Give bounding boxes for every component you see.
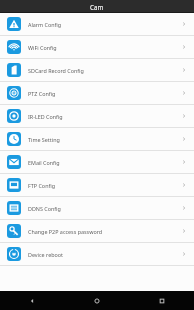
button[interactable]: Alarm Config xyxy=(0,13,194,36)
button[interactable]: IR-LED Config xyxy=(0,105,194,128)
staticText: Cam xyxy=(90,3,104,11)
staticText: Change P2P access password xyxy=(28,228,103,235)
staticText: Device reboot xyxy=(28,251,63,258)
button[interactable]: Recent apps xyxy=(129,291,194,310)
staticText: SDCard Record Config xyxy=(28,67,84,74)
staticText: FTP Config xyxy=(28,182,56,189)
staticText: Time Setting xyxy=(28,136,60,143)
button[interactable]: SDCard Record Config xyxy=(0,59,194,82)
staticText: EMail Config xyxy=(28,159,60,166)
button[interactable]: WiFi Config xyxy=(0,36,194,59)
staticText: DDNS Config xyxy=(28,205,61,212)
button[interactable]: Home xyxy=(64,291,129,310)
button[interactable]: PTZ Config xyxy=(0,82,194,105)
staticText: Alarm Config xyxy=(28,21,62,28)
button[interactable]: Device reboot xyxy=(0,243,194,266)
button[interactable]: DDNS Config xyxy=(0,197,194,220)
button[interactable]: EMail Config xyxy=(0,151,194,174)
staticText: WiFi Config xyxy=(28,44,57,51)
staticText: IR-LED Config xyxy=(28,113,63,120)
button[interactable]: Back xyxy=(0,291,64,310)
button[interactable]: Time Setting xyxy=(0,128,194,151)
button[interactable]: Change P2P access password xyxy=(0,220,194,243)
button[interactable]: FTP Config xyxy=(0,174,194,197)
staticText: PTZ Config xyxy=(28,90,56,97)
